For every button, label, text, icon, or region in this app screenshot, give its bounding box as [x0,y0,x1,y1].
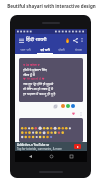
staticText: हर धड़कन में बस तू ही तू है [23,91,56,96]
button[interactable]: बेवफा [70,45,87,54]
button[interactable]: More options [79,37,85,43]
staticText: Tap for tutorials, summaries, & more [17,147,62,151]
button[interactable]: Facebook [70,103,75,108]
button[interactable]: दोस्ती [53,45,70,54]
button[interactable]: Copy [52,103,58,109]
button[interactable]: Share [71,36,79,44]
staticText: ♥ तेरे ख्यालों में ♥ [23,77,45,81]
button[interactable] [19,118,83,142]
staticText: जीता हूँ मैं [23,72,35,77]
staticText: दोस्ती [58,48,65,52]
staticText: Beutiful shayari with interactive design [0,3,103,9]
staticText: जब तुम दूर होते हो मुझसे [23,81,54,86]
staticText: दर्द भरी [40,48,50,52]
staticText: हिंदी शायरी [26,36,47,43]
button[interactable]: YouTube [74,144,81,149]
button[interactable]: ♥ प्रेम कविता ♥ [19,58,83,102]
staticText: प्यार भरी [20,48,31,52]
button[interactable]: Trending [63,36,71,44]
staticText: होंठों पे मुस्कान लिए [23,67,47,72]
button[interactable]: प्यार भरी [15,45,36,54]
button[interactable]: More options [78,111,84,117]
button[interactable]: दर्द भरी [36,45,53,54]
button[interactable]: Addictive-n YouTube se [17,142,85,151]
button[interactable]: Home [47,152,56,161]
staticText: बेवफा [75,48,82,52]
staticText: Addictive-n YouTube se [17,143,50,147]
staticText: तो बेचैन सा हो जाता हूँ मैं [23,86,53,91]
button[interactable]: WhatsApp [65,103,70,108]
staticText: ♥ प्रेम कविता ♥ [23,63,40,67]
button[interactable]: Open menu [17,36,25,44]
button[interactable]: Share [60,103,65,108]
button[interactable]: Recents [67,152,76,161]
button[interactable]: Back [26,152,35,161]
button[interactable]: Favorite [70,110,77,117]
